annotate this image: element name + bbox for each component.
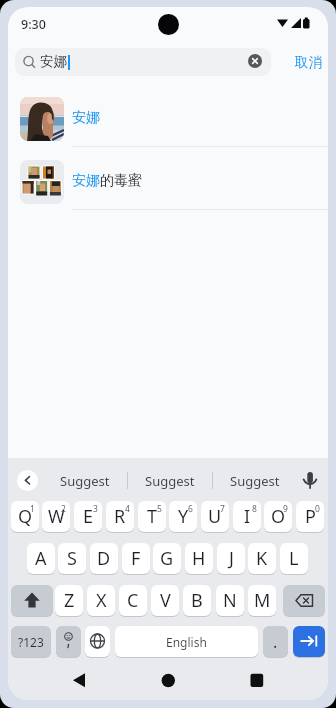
button[interactable]: A: [27, 543, 55, 574]
button[interactable]: [283, 585, 325, 616]
staticText: Q: [18, 504, 33, 529]
button[interactable]: [8, 153, 328, 209]
staticText: 安娜: [72, 109, 100, 127]
button[interactable]: Suggest: [223, 470, 287, 491]
staticText: 3: [93, 503, 98, 515]
button[interactable]: .: [263, 626, 288, 657]
button[interactable]: [146, 667, 190, 695]
staticText: 2: [61, 503, 66, 515]
staticText: V: [160, 588, 171, 613]
button[interactable]: Z: [55, 585, 83, 616]
staticText: .: [273, 631, 278, 653]
staticText: D: [97, 546, 111, 571]
button[interactable]: [298, 466, 324, 494]
staticText: Suggest: [60, 472, 110, 490]
staticText: C: [127, 588, 139, 613]
staticText: 安娜: [40, 53, 67, 70]
button[interactable]: I: [233, 501, 261, 532]
staticText: T: [147, 504, 158, 529]
button[interactable]: [8, 90, 328, 146]
staticText: Suggest: [230, 472, 280, 490]
button[interactable]: K: [248, 543, 276, 574]
staticText: U: [208, 504, 222, 529]
button[interactable]: G: [153, 543, 181, 574]
staticText: F: [131, 546, 141, 571]
staticText: 安娜的毒蜜: [72, 172, 142, 190]
staticText: J: [229, 546, 234, 571]
staticText: P: [305, 504, 316, 529]
staticText: M: [254, 588, 271, 613]
staticText: 6: [188, 503, 193, 515]
button[interactable]: S: [58, 543, 86, 574]
button[interactable]: Suggest: [53, 470, 117, 491]
button[interactable]: F: [122, 543, 150, 574]
staticText: L: [289, 546, 299, 571]
staticText: I: [244, 504, 251, 529]
button[interactable]: E: [74, 501, 102, 532]
button[interactable]: Q: [11, 501, 39, 532]
button[interactable]: H: [185, 543, 213, 574]
staticText: 5: [157, 503, 162, 515]
button[interactable]: [56, 626, 81, 657]
staticText: H: [192, 546, 206, 571]
button[interactable]: English: [115, 626, 258, 657]
staticText: 4: [125, 503, 130, 515]
staticText: 1: [30, 503, 35, 515]
staticText: 取消: [295, 54, 322, 71]
staticText: B: [191, 588, 203, 613]
button[interactable]: X: [87, 585, 115, 616]
staticText: N: [223, 588, 237, 613]
staticText: S: [67, 546, 77, 571]
button[interactable]: N: [216, 585, 244, 616]
button[interactable]: [11, 585, 53, 616]
staticText: X: [96, 588, 107, 613]
button[interactable]: [15, 48, 271, 76]
button[interactable]: C: [119, 585, 147, 616]
button[interactable]: [17, 470, 38, 491]
button[interactable]: [229, 667, 273, 695]
staticText: 7: [220, 503, 225, 515]
staticText: Z: [64, 588, 75, 613]
button[interactable]: Y: [169, 501, 197, 532]
staticText: Suggest: [145, 472, 195, 490]
staticText: English: [166, 634, 207, 650]
staticText: W: [48, 504, 65, 529]
staticText: A: [35, 546, 47, 571]
staticText: E: [83, 504, 94, 529]
staticText: O: [271, 504, 286, 529]
button[interactable]: 取消: [286, 48, 328, 76]
button[interactable]: [248, 54, 262, 68]
staticText: 0: [315, 503, 320, 515]
button[interactable]: J: [217, 543, 245, 574]
button[interactable]: D: [90, 543, 118, 574]
staticText: 9:30: [21, 16, 46, 33]
button[interactable]: U: [201, 501, 229, 532]
staticText: ?123: [18, 634, 44, 650]
staticText: G: [160, 546, 174, 571]
button[interactable]: ?123: [11, 626, 51, 657]
staticText: R: [114, 504, 126, 529]
staticText: 9: [283, 503, 288, 515]
button[interactable]: P: [296, 501, 324, 532]
button[interactable]: W: [42, 501, 70, 532]
button[interactable]: [63, 667, 107, 695]
staticText: Y: [178, 504, 189, 529]
button[interactable]: M: [248, 585, 276, 616]
staticText: K: [256, 546, 268, 571]
button[interactable]: Suggest: [138, 470, 202, 491]
button[interactable]: [293, 626, 325, 657]
staticText: 8: [252, 503, 257, 515]
button[interactable]: [85, 626, 110, 657]
button[interactable]: T: [138, 501, 166, 532]
button[interactable]: O: [264, 501, 292, 532]
button[interactable]: R: [106, 501, 134, 532]
button[interactable]: V: [151, 585, 179, 616]
button[interactable]: L: [280, 543, 308, 574]
button[interactable]: B: [183, 585, 211, 616]
